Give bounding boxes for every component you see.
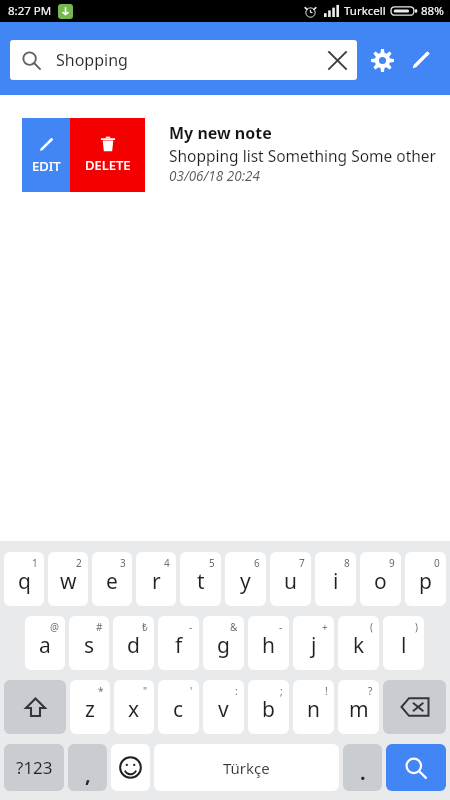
- staticText: DELETE: [85, 156, 131, 174]
- staticText: ;: [280, 684, 283, 698]
- button[interactable]: h: [248, 616, 289, 670]
- staticText: j: [311, 631, 317, 660]
- button[interactable]: Comma: [68, 744, 107, 791]
- staticText: l: [401, 631, 407, 660]
- button[interactable]: b: [248, 680, 289, 734]
- button[interactable]: v: [203, 680, 244, 734]
- staticText: EDIT: [32, 157, 61, 175]
- staticText: &: [230, 620, 238, 634]
- staticText: ": [143, 684, 148, 698]
- button[interactable]: q: [4, 552, 44, 606]
- staticText: g: [217, 631, 230, 660]
- staticText: p: [419, 567, 432, 596]
- staticText: (: [370, 620, 373, 634]
- button[interactable]: t: [180, 552, 221, 606]
- staticText: 0: [434, 556, 440, 570]
- button[interactable]: o: [360, 552, 401, 606]
- button[interactable]: l: [383, 616, 424, 670]
- button[interactable]: a: [25, 616, 65, 670]
- staticText: f: [175, 631, 183, 660]
- button[interactable]: Emoji: [111, 744, 150, 791]
- staticText: Türkçe: [223, 758, 270, 778]
- button[interactable]: Shopping: [10, 40, 357, 80]
- button[interactable]: x: [114, 680, 154, 734]
- button[interactable]: s: [69, 616, 109, 670]
- staticText: 88%: [421, 3, 444, 19]
- button[interactable]: f: [158, 616, 199, 670]
- staticText: :: [235, 684, 238, 698]
- button[interactable]: m: [338, 680, 379, 734]
- button[interactable]: Period: [343, 744, 382, 791]
- staticText: a: [39, 631, 51, 660]
- button[interactable]: My new note: [145, 118, 450, 192]
- button[interactable]: y: [225, 552, 266, 606]
- staticText: 3: [120, 556, 126, 570]
- staticText: i: [333, 567, 339, 596]
- staticText: b: [262, 695, 275, 724]
- button[interactable]: Settings: [365, 43, 399, 77]
- staticText: ): [415, 620, 418, 634]
- staticText: e: [106, 567, 118, 596]
- staticText: 8:27 PM: [8, 3, 52, 19]
- staticText: k: [353, 631, 365, 660]
- button[interactable]: d: [113, 616, 154, 670]
- staticText: 7: [299, 556, 305, 570]
- button[interactable]: Symbols: [4, 744, 64, 791]
- staticText: 03/06/18 20:24: [169, 167, 260, 185]
- staticText: ₺: [142, 620, 148, 634]
- staticText: q: [18, 567, 31, 596]
- staticText: @: [50, 620, 59, 634]
- staticText: 6: [254, 556, 260, 570]
- staticText: ,: [85, 761, 91, 788]
- button[interactable]: j: [293, 616, 334, 670]
- staticText: r: [152, 567, 161, 596]
- button[interactable]: i: [315, 552, 356, 606]
- button[interactable]: g: [203, 616, 244, 670]
- button[interactable]: n: [293, 680, 334, 734]
- button[interactable]: EDIT: [22, 118, 70, 192]
- staticText: 5: [209, 556, 215, 570]
- button[interactable]: Backspace: [383, 680, 446, 734]
- staticText: +: [322, 620, 328, 634]
- staticText: #: [96, 620, 103, 634]
- button[interactable]: DELETE: [70, 118, 145, 192]
- button[interactable]: k: [338, 616, 379, 670]
- staticText: m: [349, 695, 369, 724]
- staticText: ': [190, 684, 193, 698]
- button[interactable]: u: [270, 552, 311, 606]
- button[interactable]: w: [48, 552, 88, 606]
- staticText: w: [60, 567, 77, 596]
- staticText: -: [189, 620, 193, 634]
- staticText: 1: [32, 556, 38, 570]
- staticText: -: [279, 620, 283, 634]
- button[interactable]: c: [158, 680, 199, 734]
- staticText: u: [284, 567, 297, 596]
- staticText: 9: [389, 556, 395, 570]
- staticText: h: [262, 631, 275, 660]
- staticText: n: [307, 695, 320, 724]
- staticText: ?: [368, 684, 373, 698]
- staticText: y: [240, 567, 251, 596]
- staticText: *: [98, 684, 104, 698]
- staticText: v: [218, 695, 229, 724]
- button[interactable]: Shift: [4, 680, 66, 734]
- staticText: c: [173, 695, 184, 724]
- staticText: 8: [344, 556, 350, 570]
- staticText: 4: [164, 556, 170, 570]
- button[interactable]: p: [405, 552, 446, 606]
- staticText: x: [128, 695, 140, 724]
- staticText: ?123: [16, 756, 53, 779]
- staticText: 2: [76, 556, 82, 570]
- staticText: t: [197, 567, 205, 596]
- button[interactable]: Space: [154, 744, 339, 791]
- button[interactable]: Search: [386, 744, 446, 791]
- button[interactable]: z: [70, 680, 110, 734]
- staticText: My new note: [169, 122, 272, 144]
- button[interactable]: Clear search: [317, 40, 357, 80]
- button[interactable]: New note: [404, 43, 438, 77]
- button[interactable]: r: [136, 552, 176, 606]
- staticText: s: [84, 631, 95, 660]
- staticText: z: [85, 695, 95, 724]
- staticText: d: [127, 631, 140, 660]
- button[interactable]: e: [92, 552, 132, 606]
